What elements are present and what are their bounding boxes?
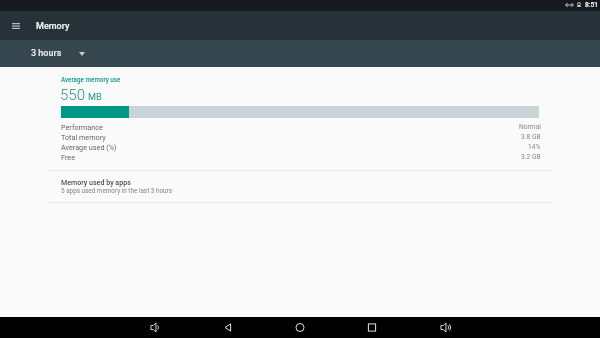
staticText: Memory — [36, 21, 70, 32]
staticText: 3.8 GB — [521, 133, 541, 141]
button[interactable]: Memory used by apps — [0, 172, 600, 203]
button[interactable]: Recents — [358, 317, 386, 338]
staticText: 3.2 GB — [521, 153, 541, 161]
button[interactable]: Back — [214, 317, 242, 338]
staticText: Free — [61, 153, 75, 161]
button[interactable]: 3 hours — [31, 48, 97, 59]
staticText: Memory used by apps — [61, 178, 131, 186]
button[interactable]: Volume down — [141, 317, 169, 338]
staticText: Average used (%) — [61, 143, 117, 151]
staticText: MB — [88, 91, 102, 102]
staticText: Average memory use — [61, 76, 121, 83]
button[interactable]: Open navigation drawer — [6, 11, 26, 40]
staticText: 550 — [60, 86, 85, 104]
staticText: 8:51 — [585, 1, 598, 9]
staticText: Performance — [61, 123, 103, 131]
button[interactable]: Volume up — [431, 317, 459, 338]
staticText: Normal — [519, 123, 541, 131]
staticText: 14% — [528, 143, 541, 151]
staticText: 5 apps used memory in the last 3 hours — [61, 187, 172, 194]
staticText: 3 hours — [31, 48, 62, 59]
button[interactable]: Home — [286, 317, 314, 338]
staticText: Total memory — [61, 133, 106, 141]
